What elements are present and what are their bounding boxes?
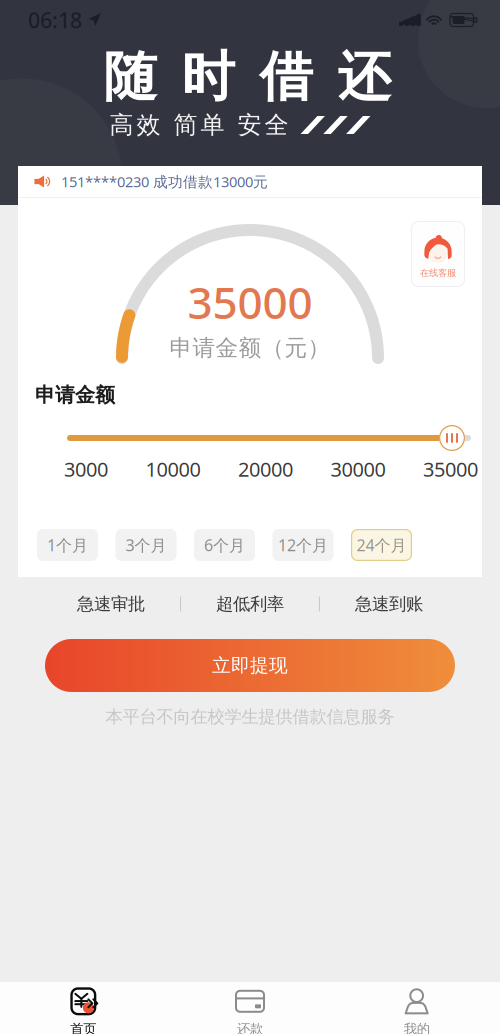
staticText: 06:18 (28, 6, 82, 34)
staticText: 在线客服 (420, 267, 456, 279)
button[interactable]: 12个月 (272, 529, 333, 561)
staticText: 3个月 (125, 534, 166, 556)
staticText: 超低利率 (216, 593, 284, 615)
staticText: 151****0230 成功借款13000元 (61, 172, 268, 191)
staticText: 35000 (187, 273, 312, 331)
staticText: 10000 (145, 456, 200, 482)
staticText: 我的 (404, 1021, 430, 1034)
staticText: 24个月 (356, 534, 406, 556)
staticText: 申请金额 (35, 383, 115, 407)
staticText: 3000 (64, 456, 108, 482)
staticText: 申请金额（元） (169, 334, 330, 362)
staticText: 首页 (70, 1021, 96, 1034)
staticText: 还款 (237, 1021, 263, 1034)
staticText: 20000 (238, 456, 293, 482)
staticText: 30000 (330, 456, 385, 482)
staticText: 急速审批 (77, 593, 145, 615)
staticText: 高效 简单 安全 (109, 110, 288, 140)
button[interactable]: 1个月 (37, 529, 98, 561)
staticText: 随时借还 (103, 44, 390, 110)
staticText: 35000 (423, 456, 478, 482)
staticText: 6个月 (204, 534, 245, 556)
staticText: 12个月 (278, 534, 328, 556)
button[interactable]: 首页 (0, 987, 167, 1034)
button[interactable]: 还款 (167, 987, 333, 1034)
button[interactable]: 在线客服 (411, 221, 465, 287)
button[interactable]: 立即提现 (45, 639, 455, 692)
button[interactable]: 我的 (333, 987, 500, 1034)
staticText: 本平台不向在校学生提供借款信息服务 (105, 706, 394, 727)
button[interactable]: 24个月 (351, 529, 412, 561)
button[interactable]: 6个月 (194, 529, 255, 561)
staticText: 立即提现 (212, 654, 288, 677)
staticText: 急速到账 (355, 593, 423, 615)
button[interactable]: 151****0230 成功借款13000元 (18, 166, 482, 197)
button[interactable]: 3个月 (115, 529, 176, 561)
staticText: 1个月 (47, 534, 88, 556)
